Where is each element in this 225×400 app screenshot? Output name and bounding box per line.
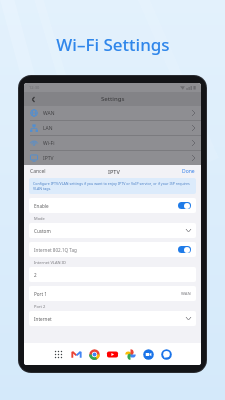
staticText: Done — [182, 168, 195, 175]
button[interactable]: Photos — [125, 349, 136, 360]
button[interactable]: Custom — [29, 223, 196, 238]
button[interactable]: Enable — [29, 198, 196, 213]
staticText: Enable — [34, 203, 49, 209]
staticText: Port 2 — [34, 304, 46, 309]
button[interactable]: 2 — [29, 267, 196, 282]
button[interactable]: WAN — [24, 106, 201, 120]
staticText: LAN — [43, 125, 53, 132]
button[interactable]: Messages — [161, 349, 172, 360]
other: Expand — [186, 317, 191, 320]
staticText: 12:30 — [29, 85, 40, 90]
button[interactable]: All apps — [53, 349, 64, 360]
staticText: IPTV — [108, 168, 120, 175]
staticText: Internet 802.1Q Tag — [34, 247, 77, 253]
button[interactable]: LAN — [24, 121, 201, 135]
button[interactable]: Cancel — [30, 168, 46, 175]
staticText: WAN — [181, 291, 191, 297]
staticText: Mode — [34, 216, 45, 221]
staticText: IPTV — [43, 155, 54, 162]
staticText: Custom — [34, 228, 51, 234]
staticText: Configure IPTV/VLAN settings if you want… — [33, 181, 192, 191]
staticText: Port 1 — [34, 291, 47, 297]
staticText: Wi–Fi Settings — [56, 33, 170, 56]
button[interactable]: Done — [182, 168, 195, 175]
staticText: Internet — [34, 316, 52, 322]
button[interactable]: Back — [28, 94, 38, 104]
staticText: Internet VLAN ID — [34, 260, 66, 265]
button[interactable]: Internet 802.1Q Tag — [29, 242, 196, 257]
button[interactable]: Meet — [143, 349, 154, 360]
staticText: Cancel — [30, 168, 46, 175]
button[interactable]: Port 1 — [29, 286, 196, 301]
staticText: WAN — [43, 110, 55, 117]
button[interactable]: YouTube — [107, 349, 118, 360]
other: Expand — [186, 229, 191, 232]
staticText: Wi-Fi — [43, 140, 55, 147]
staticText: 2 — [34, 272, 37, 278]
button[interactable]: IPTV — [24, 151, 201, 165]
button[interactable]: Wi-Fi — [24, 136, 201, 150]
button[interactable]: Chrome — [89, 349, 100, 360]
button[interactable]: Gmail — [71, 349, 82, 360]
button[interactable]: Internet — [29, 311, 196, 326]
staticText: Settings — [101, 95, 125, 103]
